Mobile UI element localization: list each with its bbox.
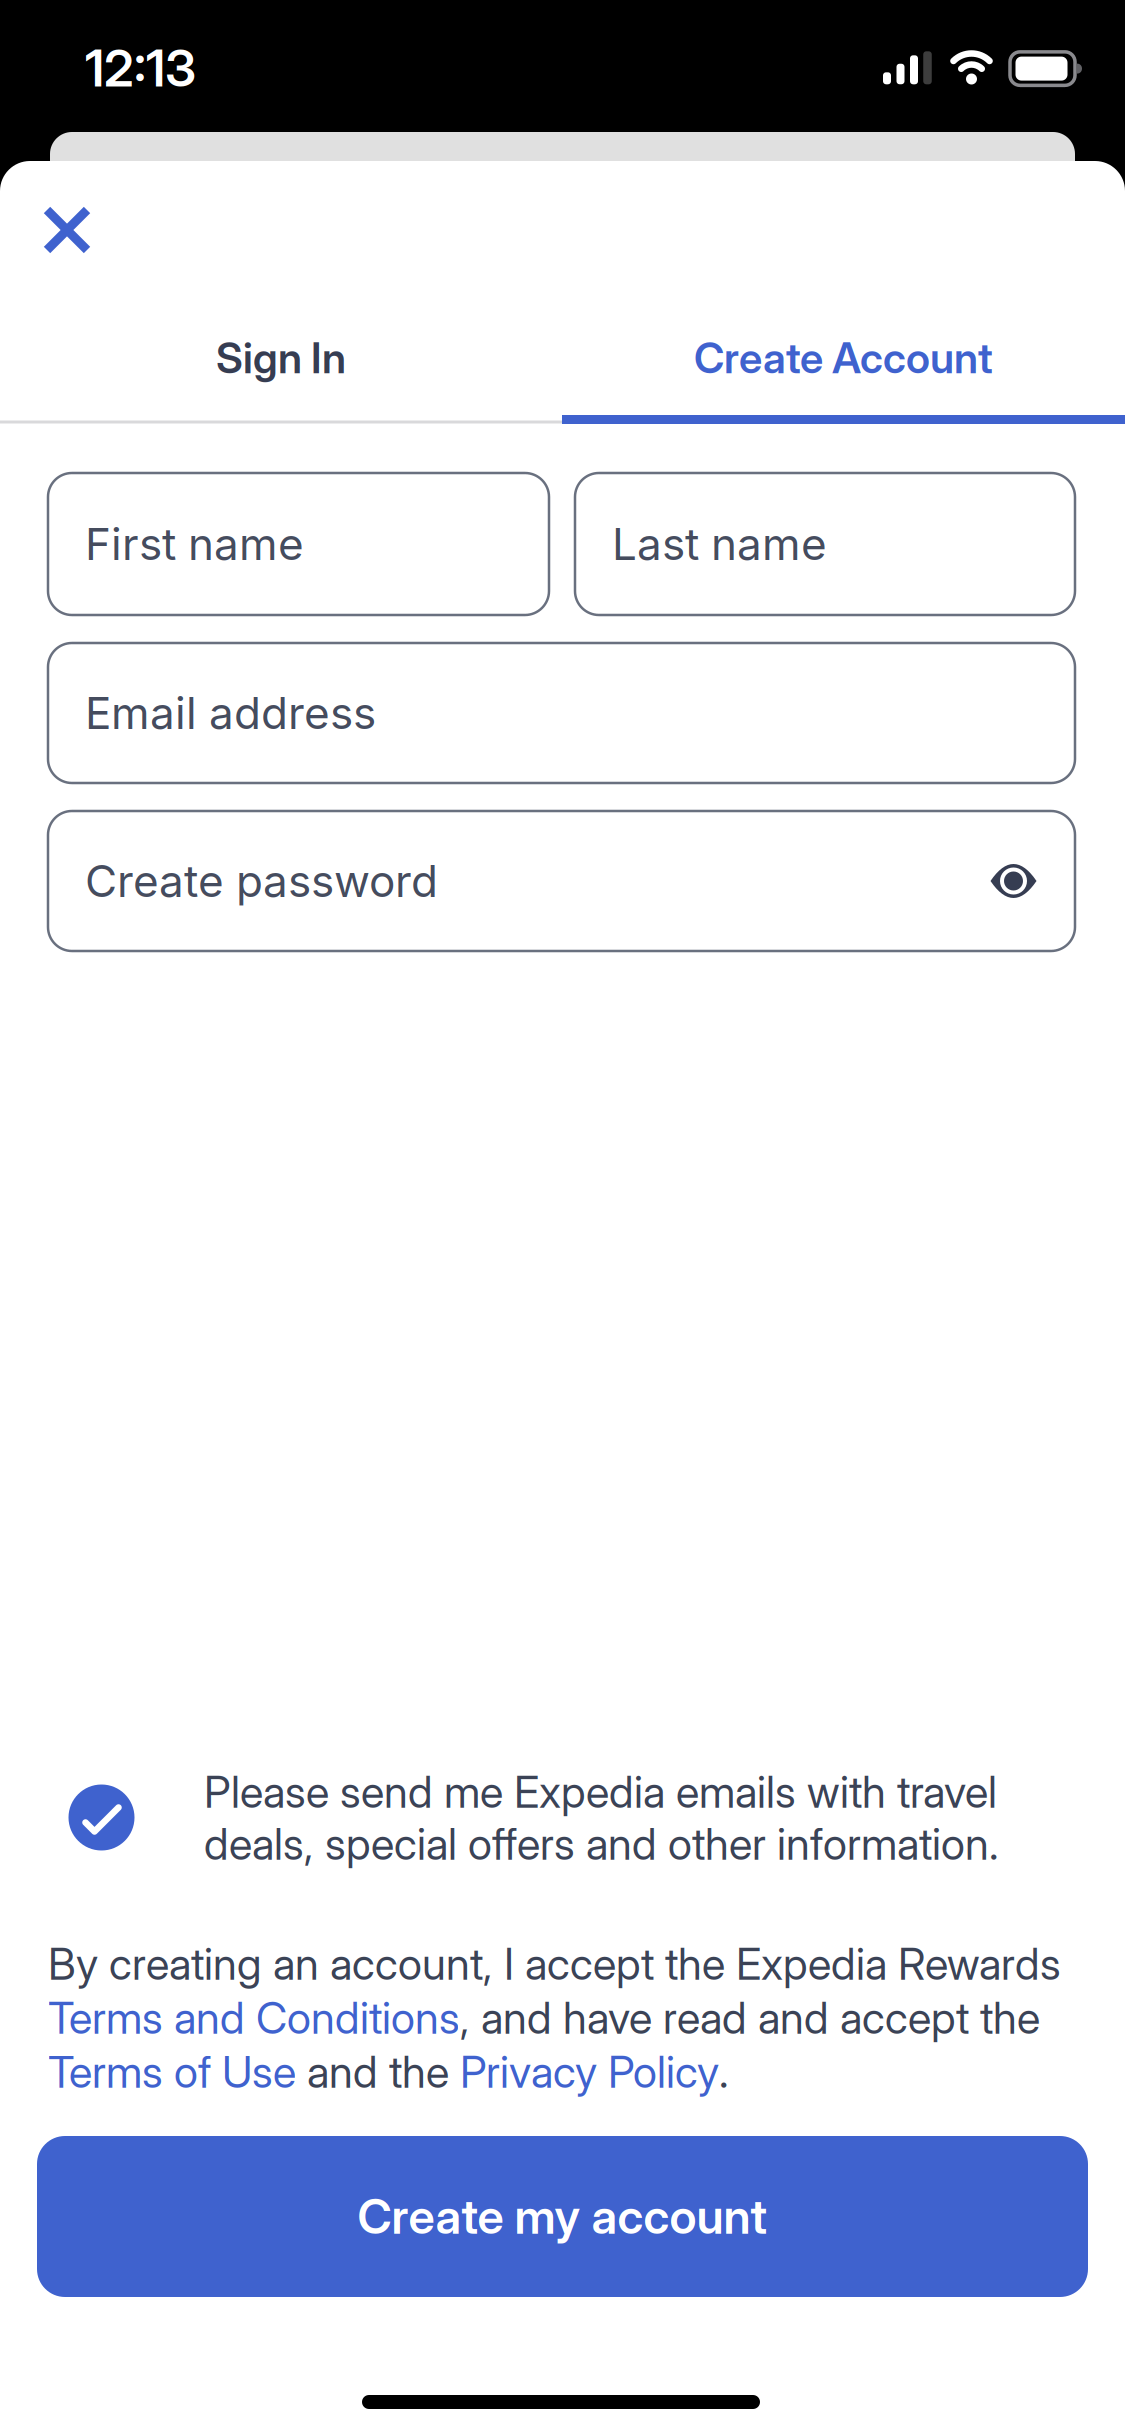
button[interactable]: Sign In	[0, 303, 562, 413]
button[interactable]: Terms and Conditions	[48, 1992, 460, 2043]
button[interactable]: Show password	[983, 851, 1043, 911]
staticText: Sign In	[216, 333, 346, 383]
button[interactable]: Email address	[48, 643, 1075, 783]
button[interactable]: Create Account	[562, 303, 1125, 413]
staticText: and the	[296, 2046, 460, 2097]
staticText: Create password	[85, 855, 438, 907]
staticText: Please send me Expedia emails with trave…	[204, 1766, 997, 1817]
button[interactable]: Send me Expedia emails	[68, 1784, 134, 1850]
button[interactable]: Close	[42, 205, 92, 255]
button[interactable]: Privacy Policy	[460, 2046, 719, 2097]
staticText: .	[719, 2046, 729, 2097]
staticText: Email address	[85, 687, 376, 739]
staticText: Privacy Policy	[460, 2046, 719, 2097]
staticText: Last name	[612, 518, 827, 570]
staticText: Terms and Conditions	[48, 1992, 460, 2043]
staticText: 12:13	[85, 38, 196, 98]
button[interactable]: Terms of Use	[48, 2046, 296, 2097]
staticText: deals, special offers and other informat…	[204, 1818, 999, 1869]
staticText: Terms of Use	[48, 2046, 296, 2097]
staticText: Create Account	[694, 333, 993, 383]
button[interactable]: First name	[48, 473, 549, 615]
button[interactable]: Last name	[575, 473, 1075, 615]
staticText: , and have read and accept the	[460, 1992, 1040, 2043]
button[interactable]: Create password	[48, 811, 1075, 951]
button[interactable]: Create my account	[37, 2136, 1088, 2297]
staticText: By creating an account, I accept the Exp…	[48, 1938, 1061, 1989]
staticText: Create my account	[357, 2189, 767, 2244]
staticText: First name	[85, 518, 304, 570]
